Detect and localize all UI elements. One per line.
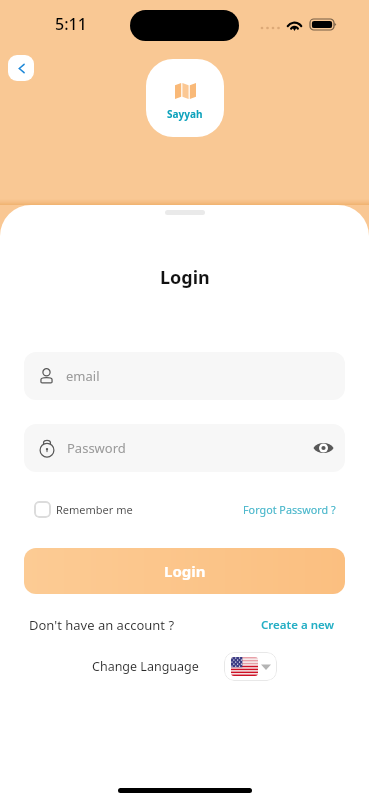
staticText: Sayyah <box>167 107 203 121</box>
staticText: Don't have an account ? <box>29 616 175 634</box>
button[interactable]: Create a new <box>261 617 335 633</box>
staticText: Change Language <box>92 658 199 675</box>
button[interactable]: Show password <box>311 436 335 460</box>
button[interactable]: Login <box>24 548 345 594</box>
staticText: Remember me <box>56 502 133 517</box>
staticText: Login <box>164 561 206 581</box>
button[interactable]: Password <box>24 424 345 472</box>
button[interactable]: Remember me <box>34 501 133 518</box>
staticText: Login <box>160 265 210 290</box>
staticText: Password <box>67 439 126 457</box>
button[interactable]: Back <box>8 55 34 81</box>
button[interactable]: Change language <box>224 652 277 681</box>
button[interactable]: email <box>24 352 345 400</box>
button[interactable]: Forgot Password ? <box>243 502 336 517</box>
staticText: email <box>66 367 100 385</box>
staticText: 5:11 <box>55 13 87 35</box>
